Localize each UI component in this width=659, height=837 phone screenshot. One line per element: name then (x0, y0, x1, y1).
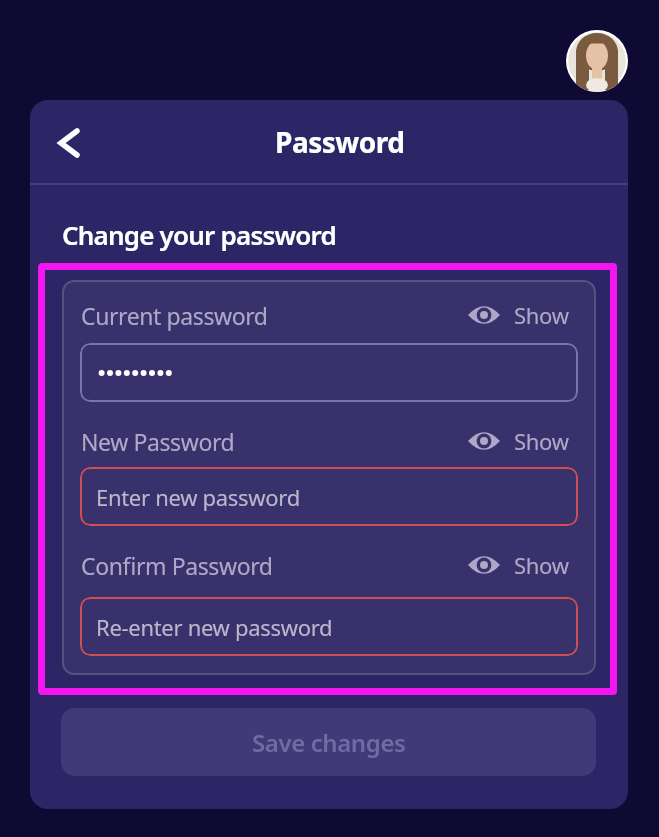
button[interactable]: Enter new password (80, 467, 578, 526)
staticText: Enter new password (96, 482, 300, 512)
staticText: Confirm Password (81, 550, 273, 581)
button[interactable] (47, 121, 91, 165)
button[interactable] (80, 343, 578, 402)
button[interactable]: Show (468, 298, 578, 332)
button[interactable] (566, 30, 628, 92)
button[interactable]: Show (468, 548, 578, 582)
staticText: Show (514, 426, 569, 456)
staticText: Show (514, 550, 569, 580)
staticText: Save changes (252, 726, 406, 759)
staticText: Show (514, 300, 569, 330)
button[interactable]: Save changes (61, 708, 596, 776)
button[interactable]: Show (468, 424, 578, 458)
staticText: Change your password (62, 217, 336, 252)
staticText: Current password (81, 300, 268, 331)
staticText: Password (275, 123, 405, 161)
staticText: New Password (81, 426, 235, 457)
staticText: Re-enter new password (96, 612, 333, 642)
button[interactable]: Re-enter new password (80, 597, 578, 656)
